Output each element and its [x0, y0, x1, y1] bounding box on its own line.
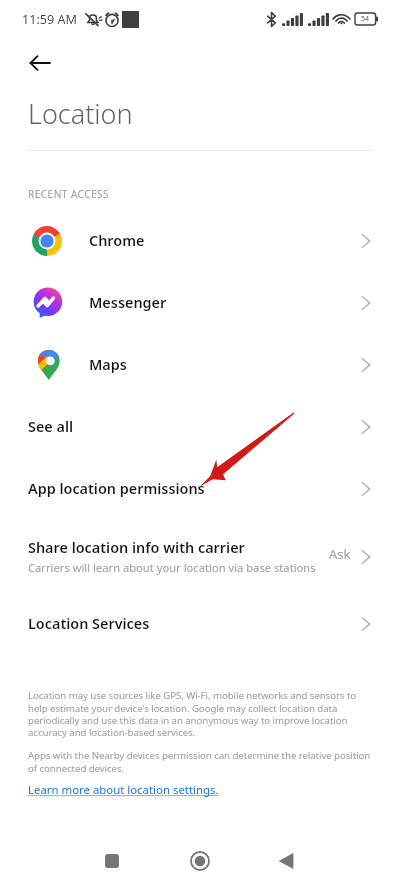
staticText: 54: [361, 14, 370, 24]
staticText: Location: [28, 95, 133, 132]
staticText: Ask: [329, 545, 351, 563]
button[interactable]: See all: [0, 396, 400, 458]
staticText: See all: [28, 417, 74, 437]
staticText: Messenger: [89, 293, 167, 313]
staticText: Location may use sources like GPS, Wi-Fi…: [28, 689, 362, 738]
button[interactable]: Back: [263, 838, 309, 884]
staticText: 11:59 AM: [22, 11, 77, 28]
button[interactable]: Home: [177, 838, 223, 884]
button[interactable]: App location permissions: [0, 458, 400, 520]
button[interactable]: Messenger: [0, 272, 400, 334]
staticText: Apps with the Nearby devices permission …: [28, 749, 378, 774]
staticText: Carriers will learn about your location …: [28, 560, 316, 575]
button[interactable]: Location Services: [0, 593, 400, 655]
staticText: Learn more about location settings.: [28, 782, 219, 798]
button[interactable]: Maps: [0, 334, 400, 396]
button[interactable]: Back: [18, 41, 62, 85]
staticText: RECENT ACCESS: [28, 187, 110, 201]
staticText: Chrome: [89, 231, 145, 251]
button[interactable]: Recent apps: [89, 838, 135, 884]
button[interactable]: Share location info with carrier: [0, 520, 400, 593]
staticText: Maps: [89, 355, 127, 375]
button[interactable]: Learn more about location settings.: [28, 782, 219, 798]
button[interactable]: Chrome: [0, 210, 400, 272]
staticText: Location Services: [28, 614, 150, 634]
staticText: Share location info with carrier: [28, 538, 245, 558]
staticText: App location permissions: [28, 479, 205, 499]
